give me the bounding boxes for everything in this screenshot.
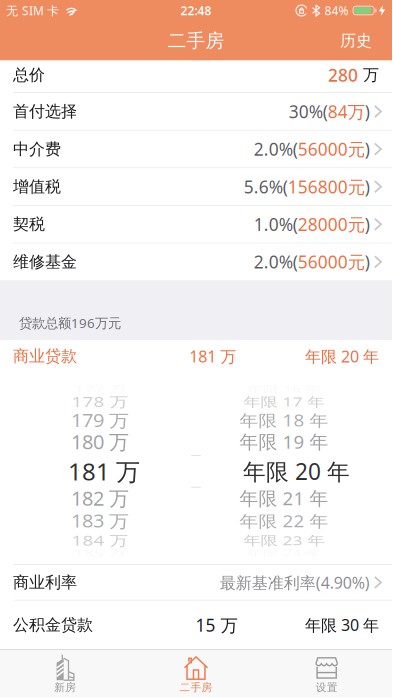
staticText: 年限 18 年 (239, 408, 328, 433)
staticText: 商业利率 (13, 573, 77, 592)
staticText: 年限 19 年 (239, 429, 328, 454)
staticText: 年限 23 年 (243, 529, 324, 552)
staticText: 2.0%( (254, 250, 298, 273)
staticText: 年限 24 年 (247, 542, 321, 563)
staticText: ) (365, 138, 370, 161)
staticText: 182 万 (71, 485, 129, 511)
staticText: ) (365, 213, 370, 236)
staticText: 年限 20 年 (305, 346, 379, 367)
staticText: 22:48 (180, 2, 211, 18)
staticText: 179 万 (71, 407, 129, 434)
button[interactable]: 公积金贷款 (0, 601, 392, 649)
staticText: 178 万 (71, 389, 128, 414)
button[interactable]: 商业利率 (0, 565, 392, 600)
staticText: 总价 (13, 65, 45, 85)
staticText: ) (365, 100, 370, 123)
staticText: 万 (358, 65, 379, 85)
button[interactable]: 中介费 (0, 131, 392, 168)
staticText: 84万 (328, 100, 365, 123)
staticText: 历史 (340, 31, 372, 51)
staticText: 无 SIM 卡 (6, 2, 59, 18)
staticText: 年限 22 年 (239, 508, 328, 533)
staticText: 年限 20 年 (243, 456, 350, 486)
staticText: 185 万 (74, 541, 126, 564)
staticText: 年限 16 年 (247, 378, 321, 399)
staticText: 年限 21 年 (239, 485, 328, 510)
staticText: 设置 (316, 681, 338, 694)
button[interactable]: 维修基金 (0, 243, 392, 280)
staticText: 契税 (13, 214, 45, 234)
staticText: 84% (324, 2, 348, 18)
staticText: 首付选择 (13, 102, 77, 121)
button[interactable]: 商业贷款 (0, 340, 392, 372)
staticText: 28000元 (298, 213, 365, 236)
staticText: 181 万 (68, 455, 140, 487)
staticText: 年限 30 年 (305, 614, 379, 635)
staticText: 280 (328, 63, 358, 86)
staticText: 公积金贷款 (13, 615, 93, 635)
staticText: 156800元 (288, 175, 365, 198)
staticText: 177 万 (74, 377, 126, 400)
staticText: 增值税 (13, 177, 61, 196)
button[interactable]: 首付选择 (0, 93, 392, 130)
button[interactable]: 增值税 (0, 168, 392, 205)
staticText: 5.6%( (244, 175, 288, 198)
staticText: 56000元 (298, 250, 365, 273)
button[interactable]: 历史 (340, 31, 392, 51)
staticText: 贷款总额196万元 (19, 314, 121, 332)
staticText: 2.0%( (254, 138, 298, 161)
staticText: 180 万 (71, 428, 129, 455)
staticText: 1.0%( (254, 213, 298, 236)
staticText: 184 万 (71, 528, 128, 553)
staticText: 新房 (54, 681, 76, 694)
staticText: 商业贷款 (13, 346, 77, 366)
staticText: ) (365, 175, 370, 198)
staticText: 维修基金 (13, 252, 77, 272)
staticText: 二手房 (179, 681, 212, 694)
staticText: 183 万 (71, 508, 129, 534)
staticText: 181 万 (189, 346, 236, 367)
staticText: 中介费 (13, 139, 61, 159)
staticText: ) (365, 250, 370, 273)
button[interactable]: 契税 (0, 206, 392, 243)
button[interactable]: 总价 (0, 60, 392, 92)
staticText: 30%( (289, 100, 328, 123)
button[interactable]: 二手房 (131, 649, 261, 697)
button[interactable]: 设置 (261, 649, 392, 697)
staticText: 最新基准利率(4.90%) (220, 572, 370, 593)
staticText: 56000元 (298, 138, 365, 161)
staticText: 年限 17 年 (243, 390, 324, 413)
staticText: 二手房 (167, 29, 224, 52)
staticText: 15 万 (196, 613, 238, 636)
button[interactable]: 新房 (0, 649, 131, 697)
